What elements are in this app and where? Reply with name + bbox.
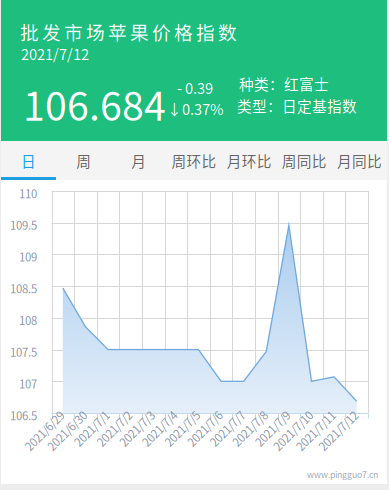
staticText: ↓0.37% [167, 98, 224, 119]
staticText: 2021/7/11 [292, 426, 342, 442]
button[interactable]: 周 [56, 141, 111, 180]
staticText: 2021/7/7 [208, 426, 252, 442]
staticText: 2021/7/2 [95, 426, 139, 442]
button[interactable]: 日 [1, 141, 56, 180]
staticText: 周 [76, 150, 91, 171]
staticText: 2021/7/6 [185, 426, 229, 442]
staticText: 2021/7/5 [162, 426, 206, 442]
button[interactable]: 月环比 [222, 141, 277, 180]
staticText: 109.5 [10, 217, 37, 233]
staticText: 106.684 [23, 75, 166, 132]
staticText: 110 [19, 185, 37, 201]
staticText: 2021/7/1 [72, 426, 116, 442]
staticText: - 0.39 [177, 77, 213, 98]
staticText: 月 [131, 150, 146, 171]
staticText: 108.5 [10, 280, 37, 296]
staticText: 2021/6/30 [43, 426, 93, 442]
staticText: 109 [19, 248, 37, 265]
staticText: 周同比 [282, 150, 327, 171]
staticText: 周环比 [171, 150, 216, 171]
staticText: 类型：日定基指数 [237, 95, 357, 116]
staticText: www.pingguo7.cn [307, 468, 378, 480]
staticText: 2021/7/9 [253, 426, 297, 442]
staticText: 2021/7/8 [230, 426, 274, 442]
staticText: 2021/6/29 [21, 426, 71, 442]
button[interactable]: 月 [111, 141, 166, 180]
staticText: 107.5 [10, 344, 37, 360]
staticText: 2021/7/4 [140, 426, 184, 442]
button[interactable]: 周环比 [166, 141, 221, 180]
staticText: 107 [19, 375, 37, 392]
staticText: 月环比 [227, 150, 272, 171]
staticText: 月同比 [337, 150, 382, 171]
button[interactable]: 周同比 [277, 141, 332, 180]
staticText: 2021/7/10 [269, 426, 319, 442]
staticText: 日 [21, 150, 36, 171]
staticText: 2021/7/12 [21, 43, 89, 64]
staticText: 108 [19, 312, 37, 328]
staticText: 批发市场苹果价格指数 [20, 18, 237, 45]
staticText: 2021/7/12 [315, 426, 365, 442]
staticText: 种类：红富士 [239, 73, 329, 94]
staticText: 2021/7/3 [117, 426, 161, 442]
staticText: 106.5 [10, 407, 37, 423]
button[interactable]: 月同比 [332, 141, 387, 180]
